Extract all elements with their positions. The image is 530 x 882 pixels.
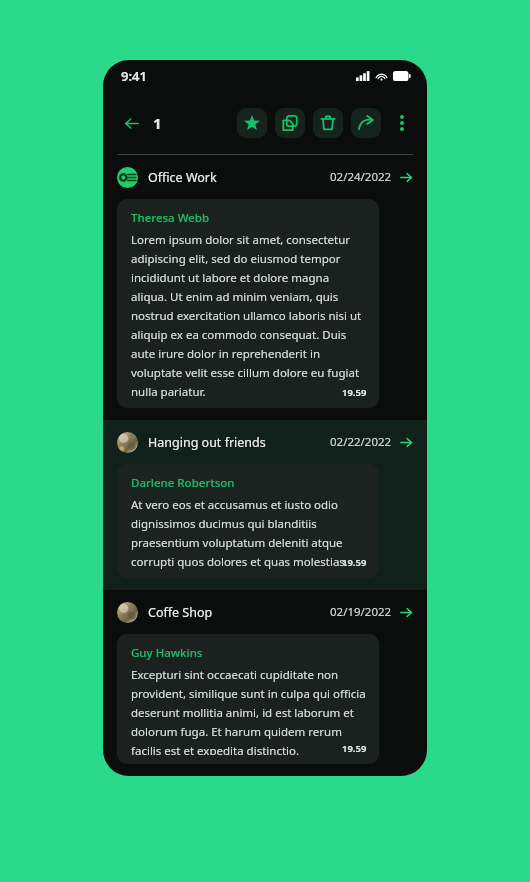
button[interactable]: Office Work xyxy=(103,155,427,420)
staticText: 19.59 xyxy=(342,386,367,399)
staticText: 1 xyxy=(153,113,162,133)
button[interactable]: Share xyxy=(351,108,381,138)
button[interactable]: More options xyxy=(389,108,415,138)
staticText: Theresa Webb xyxy=(131,210,210,226)
button[interactable]: Theresa Webb xyxy=(117,199,379,408)
staticText: Office Work xyxy=(148,169,217,186)
staticText: 19.59 xyxy=(342,742,367,755)
button[interactable]: Copy xyxy=(275,108,305,138)
staticText: At vero eos et accusamus et iusto odio d… xyxy=(131,497,367,569)
staticText: Guy Hawkins xyxy=(131,645,203,661)
button[interactable]: Hanging out friends xyxy=(103,420,427,590)
staticText: 02/24/2022 xyxy=(330,169,392,185)
button[interactable]: Favorite xyxy=(237,108,267,138)
button[interactable]: Guy Hawkins xyxy=(117,634,379,764)
staticText: 02/22/2022 xyxy=(330,434,392,450)
staticText: Coffe Shop xyxy=(148,604,213,621)
staticText: Darlene Robertson xyxy=(131,475,235,491)
button[interactable]: Coffe Shop xyxy=(103,590,427,776)
staticText: 19.59 xyxy=(342,556,367,569)
button[interactable]: Darlene Robertson xyxy=(117,464,379,578)
button[interactable]: Back xyxy=(117,109,145,137)
staticText: Lorem ipsum dolor sit amet, consectetur … xyxy=(131,232,367,399)
staticText: Excepturi sint occaecati cupiditate non … xyxy=(131,667,367,755)
staticText: 02/19/2022 xyxy=(330,604,392,620)
staticText: Hanging out friends xyxy=(148,434,266,451)
button[interactable]: Delete xyxy=(313,108,343,138)
staticText: 9:41 xyxy=(121,67,147,85)
